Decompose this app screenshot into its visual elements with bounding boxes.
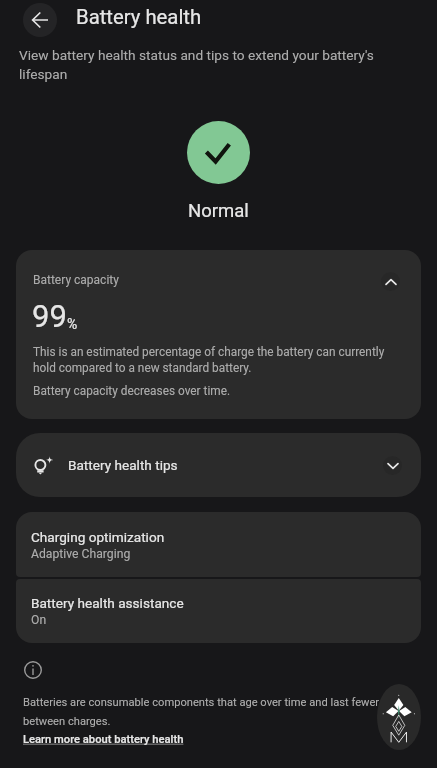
staticText: Battery capacity [33,273,119,287]
button[interactable]: Collapse battery capacity [371,262,409,300]
button[interactable]: Battery health assistance [16,579,421,643]
staticText: 99 [32,298,67,334]
button[interactable]: Back [23,3,57,37]
staticText: Normal [188,200,249,222]
staticText: On [31,613,47,627]
staticText: Battery health tips [68,457,178,473]
staticText: View battery health status and tips to e… [19,47,397,82]
button[interactable]: Charging optimization [16,512,421,577]
button[interactable]: Learn more about battery health [23,733,184,746]
staticText: Batteries are consumable components that… [23,696,428,728]
staticText: Adaptive Charging [31,547,131,561]
button[interactable]: Battery health tips [16,433,421,497]
staticText: Battery health assistance [31,595,184,611]
staticText: Battery capacity decreases over time. [33,384,231,398]
staticText: Battery health [76,5,202,29]
staticText: % [67,316,78,332]
staticText: Charging optimization [31,529,165,545]
staticText: This is an estimated percentage of charg… [33,345,398,375]
button[interactable]: Battery capacity [16,250,421,419]
